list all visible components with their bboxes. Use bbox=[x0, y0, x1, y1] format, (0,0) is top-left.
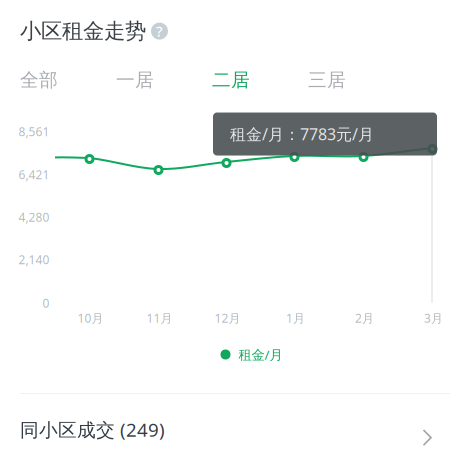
staticText: 2月 bbox=[355, 310, 374, 326]
button[interactable]: 一居 bbox=[116, 65, 212, 95]
staticText: 10月 bbox=[77, 310, 103, 326]
button[interactable]: 同小区成交 (249) bbox=[0, 400, 450, 452]
staticText: ? bbox=[156, 21, 163, 41]
button[interactable]: 小区租金走势 bbox=[20, 18, 168, 44]
staticText: 11月 bbox=[146, 310, 172, 326]
staticText: 三居 bbox=[308, 68, 346, 91]
staticText: 二居 bbox=[212, 68, 250, 91]
staticText: 租金/月：7783元/月 bbox=[230, 123, 374, 145]
staticText: 2,140 bbox=[18, 251, 49, 267]
staticText: 租金/月 bbox=[238, 346, 282, 363]
staticText: 4,280 bbox=[18, 209, 49, 225]
button[interactable]: 二居 bbox=[212, 65, 308, 95]
staticText: 1月 bbox=[286, 310, 305, 326]
staticText: 12月 bbox=[214, 310, 240, 326]
staticText: 0 bbox=[42, 295, 49, 311]
staticText: 一居 bbox=[116, 68, 154, 91]
staticText: 小区租金走势 bbox=[20, 18, 146, 44]
button[interactable]: 三居 bbox=[308, 65, 404, 95]
staticText: 全部 bbox=[20, 68, 58, 91]
staticText: 同小区成交 (249) bbox=[20, 417, 165, 442]
button[interactable]: 全部 bbox=[20, 65, 116, 95]
staticText: 3月 bbox=[424, 310, 443, 326]
staticText: 6,421 bbox=[18, 166, 49, 182]
staticText: 8,561 bbox=[18, 123, 49, 139]
